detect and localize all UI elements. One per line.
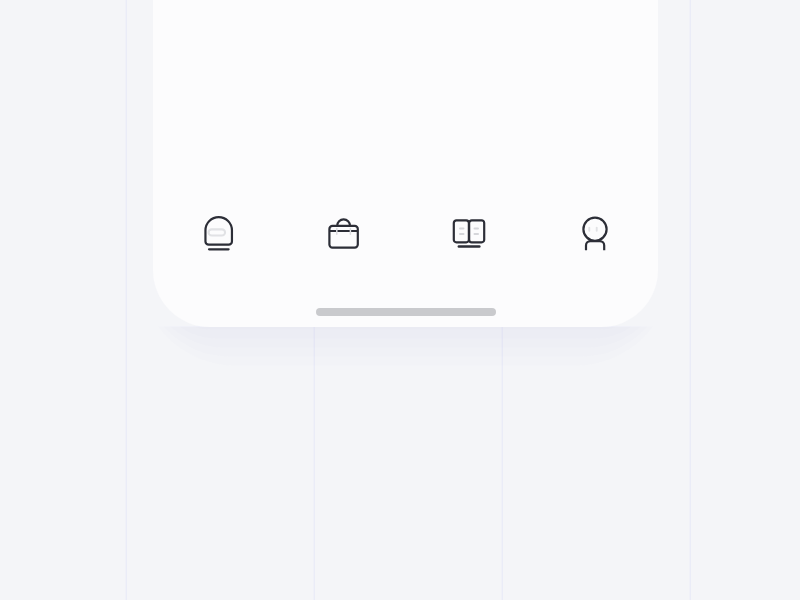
button[interactable]: Library <box>406 193 532 273</box>
button[interactable]: Profile <box>532 193 658 273</box>
button[interactable]: Shop <box>280 193 406 273</box>
button[interactable]: Home <box>153 193 280 273</box>
